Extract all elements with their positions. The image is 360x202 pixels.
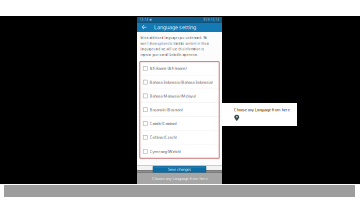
button[interactable]: Bahasa Indonesia (Bahasa Indonesia) [140, 75, 219, 89]
staticText: Language setting [154, 24, 196, 31]
staticText: Choose any Language from here [151, 176, 207, 181]
button[interactable]: Back [138, 22, 150, 32]
button[interactable]: Čeština (Czech) [140, 131, 219, 144]
button[interactable]: Afrikaans (Afrikaans) [140, 62, 219, 75]
staticText: Čeština (Czech) [149, 135, 176, 140]
staticText: 85% [203, 18, 209, 21]
button[interactable]: Bosanski (Bosnian) [140, 103, 219, 117]
staticText: Bosanski (Bosnian) [149, 107, 182, 112]
staticText: Bahasa Indonesia (Bahasa Indonesia) [149, 79, 212, 85]
staticText: Choose any Language from here [234, 107, 290, 112]
staticText: Català (Catalan) [149, 121, 176, 126]
staticText: Afrikaans (Afrikaans) [149, 66, 186, 71]
button[interactable]: Català (Catalan) [140, 117, 219, 131]
staticText: improve your overall LinkedIn experience… [140, 53, 198, 57]
button[interactable]: Bahasa Malaysia (Melayu) [140, 89, 219, 103]
button[interactable]: Save changes [153, 166, 206, 172]
staticText: 13:14 [210, 18, 219, 21]
button[interactable]: Cymraeg (Welsh) [140, 144, 219, 158]
staticText: Select additional languages you understa… [140, 36, 207, 40]
staticText: languages and we will use this informati… [140, 47, 204, 51]
staticText: Save changes [168, 167, 191, 172]
staticText: Bahasa Malaysia (Melayu) [149, 93, 195, 99]
staticText: won't show options to translate content … [140, 42, 209, 45]
staticText: Cymraeg (Welsh) [149, 149, 180, 154]
staticText: 13:14 [139, 18, 148, 21]
